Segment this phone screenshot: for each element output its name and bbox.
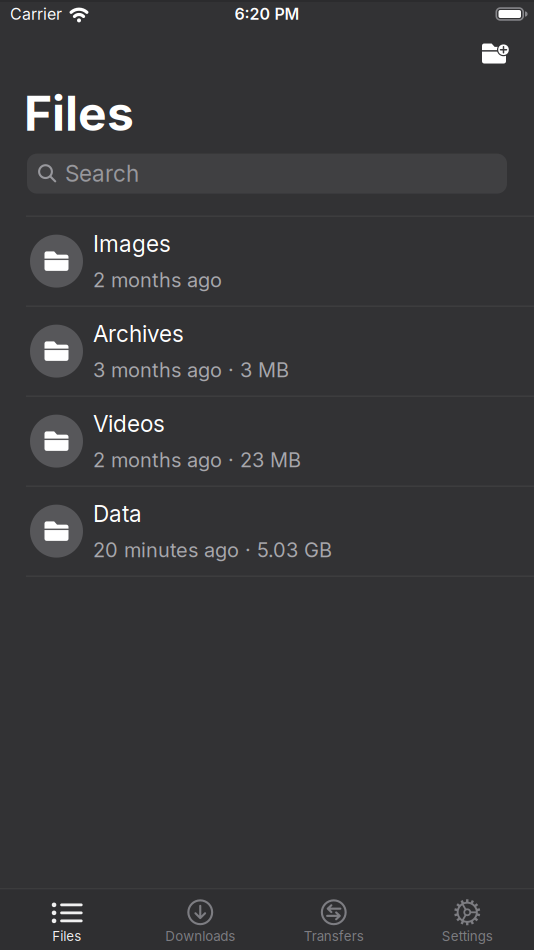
staticText: Transfers xyxy=(304,928,364,944)
staticText: Carrier xyxy=(10,5,62,23)
staticText: Settings xyxy=(442,928,493,944)
staticText: Search xyxy=(65,160,139,187)
staticText: Archives xyxy=(93,320,184,347)
button[interactable]: Files xyxy=(0,899,133,944)
staticText: 20 minutes ago · 5.03 GB xyxy=(93,538,332,562)
button[interactable]: Images xyxy=(0,217,534,306)
staticText: Data xyxy=(93,500,142,527)
button[interactable]: Transfers xyxy=(267,899,400,944)
staticText: Images xyxy=(93,230,171,257)
staticText: 6:20 PM xyxy=(234,5,299,23)
staticText: 2 months ago · 23 MB xyxy=(93,448,301,472)
button[interactable]: New Folder xyxy=(482,40,534,63)
staticText: Files xyxy=(52,928,81,944)
button[interactable]: Videos xyxy=(0,397,534,486)
button[interactable]: Archives xyxy=(0,307,534,396)
staticText: Videos xyxy=(93,410,165,437)
button[interactable]: Settings xyxy=(400,899,534,944)
staticText: Files xyxy=(24,85,134,142)
button[interactable]: Data xyxy=(0,487,534,576)
staticText: 2 months ago xyxy=(93,268,222,292)
staticText: 3 months ago · 3 MB xyxy=(93,358,289,382)
staticText: Downloads xyxy=(165,928,235,944)
button[interactable]: Downloads xyxy=(133,899,267,944)
button[interactable]: Search xyxy=(0,154,534,194)
